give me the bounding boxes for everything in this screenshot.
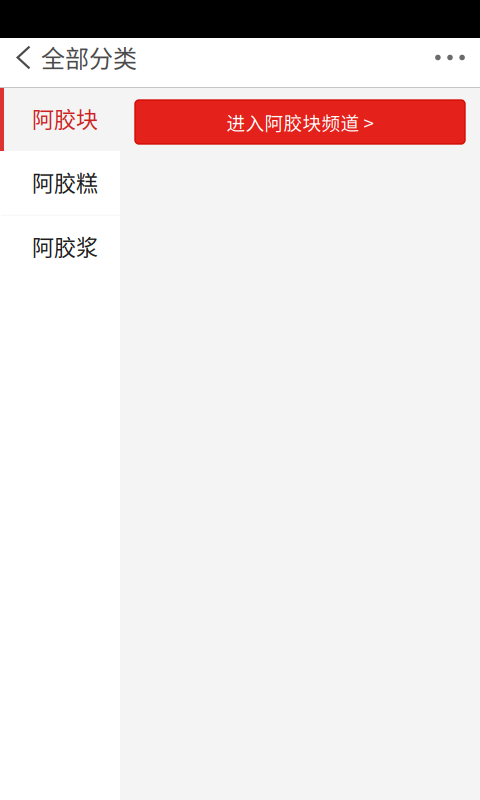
button[interactable]: More options bbox=[422, 33, 478, 82]
button[interactable]: 阿胶糕 bbox=[0, 151, 120, 215]
staticText: 阿胶糕 bbox=[32, 166, 98, 198]
staticText: 进入阿胶块频道 > bbox=[226, 108, 373, 135]
button[interactable]: 阿胶块 bbox=[0, 88, 120, 151]
button[interactable]: 进入阿胶块频道 > bbox=[135, 100, 465, 144]
button[interactable]: 阿胶浆 bbox=[0, 215, 120, 279]
staticText: 阿胶块 bbox=[32, 102, 98, 134]
staticText: 阿胶浆 bbox=[32, 230, 98, 262]
button[interactable]: 全部分类 bbox=[14, 38, 146, 87]
staticText: 全部分类 bbox=[41, 40, 137, 74]
